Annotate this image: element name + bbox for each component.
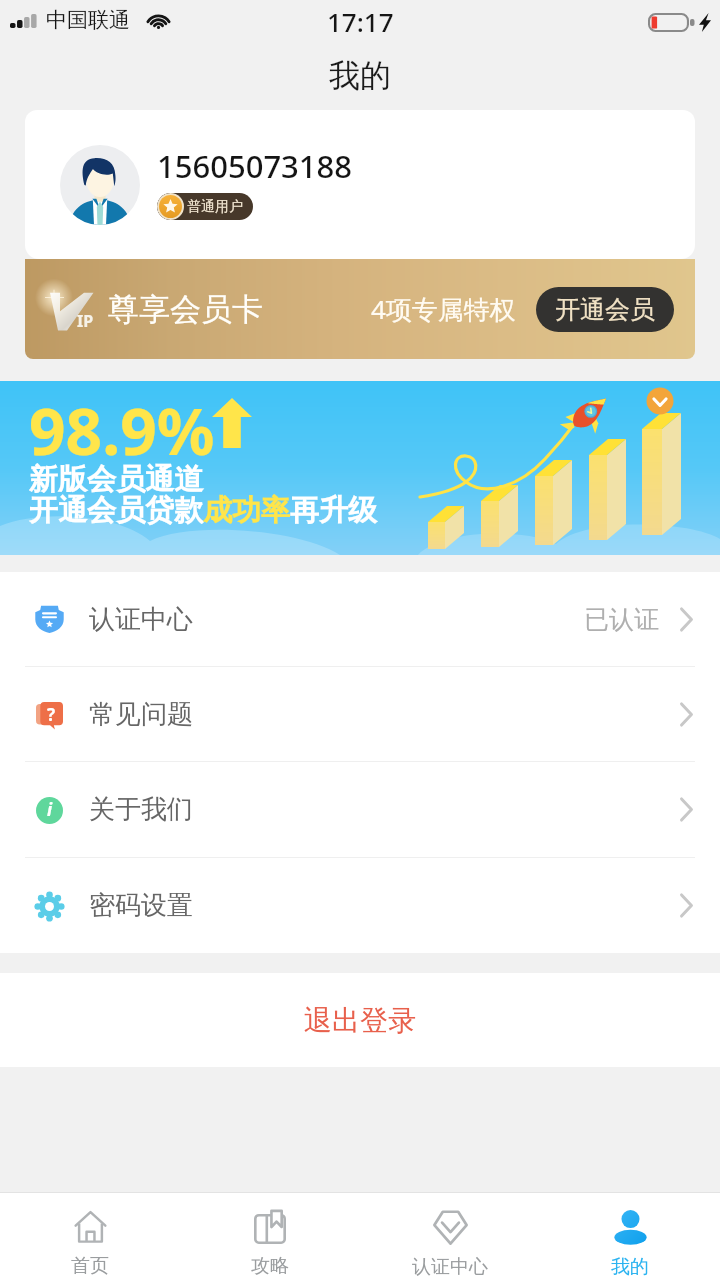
button[interactable]: 98.9%	[0, 381, 720, 555]
staticText: 常见问题	[89, 698, 193, 731]
staticText: 15605073188	[157, 145, 353, 187]
button[interactable]: 我的	[540, 1193, 720, 1280]
button[interactable]: 开通会员	[536, 287, 674, 332]
staticText: 开通会员	[555, 294, 655, 325]
staticText: 普通用户	[187, 198, 243, 216]
staticText: 我的	[329, 56, 391, 95]
staticText: 密码设置	[89, 889, 193, 922]
staticText: 成功率	[203, 492, 290, 529]
staticText: 再升级	[290, 492, 377, 529]
button[interactable]: ?	[0, 667, 720, 761]
staticText: 认证中心	[89, 603, 193, 636]
staticText: 4项专属特权	[371, 291, 516, 327]
staticText: 关于我们	[89, 793, 193, 826]
staticText: 我的	[611, 1255, 649, 1279]
staticText: 攻略	[251, 1254, 289, 1278]
staticText: 中国联通	[46, 7, 130, 33]
staticText: 认证中心	[412, 1255, 488, 1279]
staticText: 尊享会员卡	[108, 290, 263, 329]
staticText: 新版会员通道	[29, 461, 203, 498]
staticText: 17:17	[327, 4, 394, 39]
staticText: 98.9%	[29, 387, 215, 474]
staticText: 退出登录	[304, 1003, 416, 1038]
button[interactable]: IP	[25, 259, 695, 359]
button[interactable]: i	[0, 762, 720, 857]
staticText: 开通会员贷款	[29, 492, 203, 529]
staticText: i	[47, 798, 53, 821]
button[interactable]: 普通用户	[157, 193, 243, 220]
staticText: 首页	[71, 1254, 109, 1278]
staticText: 已认证	[584, 604, 659, 635]
button[interactable]: 攻略	[180, 1193, 360, 1280]
button[interactable]: 退出登录	[0, 973, 720, 1067]
button[interactable]: 认证中心	[0, 572, 720, 666]
button[interactable]: 认证中心	[360, 1193, 540, 1280]
staticText: ?	[47, 703, 56, 726]
button[interactable]: 15605073188	[25, 110, 695, 259]
button[interactable]: 首页	[0, 1193, 180, 1280]
button[interactable]: 密码设置	[0, 858, 720, 953]
staticText: IP	[77, 310, 94, 332]
